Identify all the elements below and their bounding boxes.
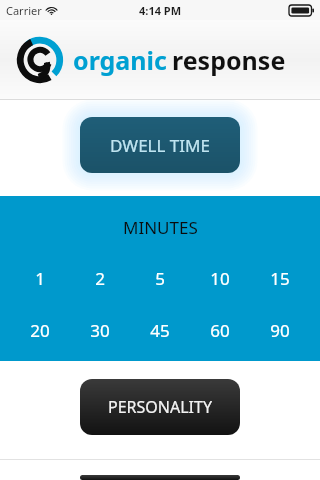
staticText: 15 bbox=[270, 267, 290, 290]
button[interactable]: 5 bbox=[138, 265, 182, 291]
staticText: 90 bbox=[270, 319, 290, 342]
button[interactable]: 45 bbox=[138, 317, 182, 343]
button[interactable]: DWELL TIME bbox=[80, 117, 240, 173]
staticText: 5 bbox=[155, 267, 165, 290]
button[interactable]: 30 bbox=[78, 317, 122, 343]
button[interactable]: 1 bbox=[18, 265, 62, 291]
staticText: DWELL TIME bbox=[110, 134, 210, 157]
button[interactable]: 60 bbox=[198, 317, 242, 343]
staticText: PERSONALITY bbox=[108, 396, 212, 418]
button[interactable]: 90 bbox=[258, 317, 302, 343]
staticText: 30 bbox=[90, 319, 110, 342]
staticText: 10 bbox=[210, 267, 230, 290]
button[interactable]: 10 bbox=[198, 265, 242, 291]
staticText: 1 bbox=[35, 267, 45, 290]
staticText: 45 bbox=[150, 319, 170, 342]
button[interactable]: 2 bbox=[78, 265, 122, 291]
button[interactable]: 20 bbox=[18, 317, 62, 343]
staticText: organic bbox=[73, 43, 167, 77]
button[interactable]: PERSONALITY bbox=[80, 379, 240, 435]
staticText: MINUTES bbox=[123, 216, 198, 239]
button[interactable] bbox=[80, 475, 240, 480]
staticText: 20 bbox=[30, 319, 50, 342]
staticText: Carrier bbox=[6, 3, 42, 18]
staticText: 4:14 PM bbox=[139, 3, 182, 18]
staticText: response bbox=[172, 43, 286, 77]
button[interactable]: 15 bbox=[258, 265, 302, 291]
staticText: 2 bbox=[95, 267, 105, 290]
staticText: 60 bbox=[210, 319, 230, 342]
